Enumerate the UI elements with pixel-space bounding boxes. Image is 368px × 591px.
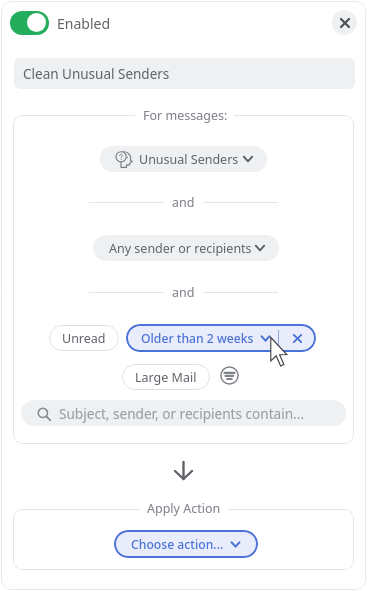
staticText: Subject, sender, or recipients contain..…	[59, 404, 305, 423]
button[interactable]: Any sender or recipients	[93, 235, 279, 261]
button[interactable]: More filters	[219, 365, 239, 385]
button[interactable]: Enabled toggle	[10, 11, 49, 35]
staticText: Large Mail	[135, 369, 197, 386]
button[interactable]: Older than 2 weeks	[126, 324, 278, 352]
staticText: and	[172, 194, 195, 211]
staticText: For messages:	[143, 107, 228, 124]
staticText: and	[172, 284, 195, 301]
staticText: Enabled	[57, 14, 111, 33]
staticText: Unread	[62, 330, 106, 347]
button[interactable]: Large Mail	[122, 364, 210, 390]
staticText: Clean Unusual Senders	[23, 65, 170, 83]
staticText: Apply Action	[147, 500, 221, 517]
staticText: Older than 2 weeks	[141, 330, 254, 347]
button[interactable]: Subject, sender, or recipients contain..…	[21, 400, 346, 426]
button[interactable]: Clean Unusual Senders	[14, 58, 355, 89]
staticText: Unusual Senders	[139, 151, 239, 168]
button[interactable]: Unread	[49, 325, 119, 351]
staticText: Choose action...	[131, 536, 224, 553]
button[interactable]: Choose action...	[114, 530, 258, 558]
button[interactable]: Remove filter	[279, 324, 316, 352]
button[interactable]: Close	[332, 10, 357, 35]
staticText: Any sender or recipients	[109, 240, 252, 257]
button[interactable]: Unusual Senders	[100, 146, 267, 172]
button[interactable]: Older than 2 weeks	[126, 324, 316, 352]
